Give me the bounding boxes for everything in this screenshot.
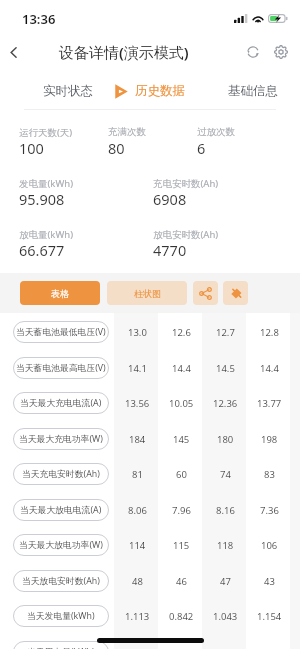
staticText: 12.6 [172, 326, 191, 339]
staticText: 当天最大充电功率(W) [19, 433, 103, 445]
staticText: 当天蓄电池最高电压(V) [16, 362, 106, 374]
staticText: 当天最大放电功率(W) [19, 539, 103, 551]
button[interactable]: 当天充电安时数(Ah) [0, 463, 300, 485]
staticText: 1.154 [257, 610, 282, 623]
staticText: 13.56 [125, 397, 150, 410]
button[interactable]: 当天发电量(kWh) [0, 605, 300, 627]
staticText: 10.05 [169, 397, 194, 410]
staticText: 发电量(kWh) [19, 177, 73, 190]
button[interactable]: 实时状态 [22, 72, 114, 110]
staticText: 当天放电安时数(Ah) [22, 575, 100, 587]
button[interactable]: 当天最大充电电流(A) [0, 392, 300, 414]
staticText: 柱状图 [134, 288, 161, 299]
staticText: 66.677 [19, 240, 65, 260]
staticText: 12.7 [216, 326, 235, 339]
staticText: 过放次数 [197, 126, 235, 138]
staticText: 1.113 [125, 610, 150, 623]
staticText: 当天蓄电池最低电压(V) [16, 326, 106, 338]
staticText: 4770 [153, 240, 187, 260]
button[interactable]: Back [0, 32, 26, 72]
staticText: 14.4 [260, 362, 279, 375]
staticText: 114 [129, 539, 146, 552]
button[interactable]: 基础信息 [206, 72, 300, 110]
staticText: 当天发电量(kWh) [27, 610, 95, 622]
staticText: 当天最大放电电流(A) [20, 504, 102, 516]
button[interactable]: Refresh [239, 32, 267, 72]
staticText: 8.16 [216, 504, 235, 517]
staticText: 180 [217, 433, 234, 446]
staticText: 13.0 [128, 326, 147, 339]
staticText: 实时状态 [43, 83, 93, 99]
staticText: 14.5 [216, 362, 235, 375]
button[interactable]: 当天最大放电功率(W) [0, 534, 300, 556]
staticText: 46 [176, 575, 187, 588]
button[interactable]: 当天最大放电电流(A) [0, 499, 300, 521]
staticText: 81 [132, 468, 143, 481]
staticText: 放电量(kWh) [19, 228, 73, 241]
staticText: 历史数据 [135, 83, 185, 99]
staticText: 80 [108, 138, 125, 158]
staticText: 48 [132, 575, 143, 588]
staticText: 充满次数 [108, 126, 146, 138]
staticText: 基础信息 [228, 83, 278, 99]
staticText: 当天最大充电电流(A) [20, 397, 102, 409]
staticText: 8.06 [128, 504, 147, 517]
staticText: 74 [220, 468, 231, 481]
staticText: 0.842 [169, 610, 194, 623]
button[interactable]: Settings [267, 32, 295, 72]
button[interactable]: 当天放电安时数(Ah) [0, 570, 300, 592]
button[interactable]: 当天蓄电池最低电压(V) [0, 321, 300, 343]
staticText: 13.77 [257, 397, 282, 410]
staticText: 12.36 [213, 397, 238, 410]
staticText: 放电安时数(Ah) [153, 228, 219, 241]
staticText: 100 [19, 138, 44, 158]
staticText: 115 [173, 539, 190, 552]
staticText: 106 [261, 539, 278, 552]
staticText: 60 [176, 468, 187, 481]
button[interactable]: 表格 [20, 281, 100, 305]
staticText: 43 [264, 575, 275, 588]
staticText: 118 [217, 539, 234, 552]
staticText: 当天充电安时数(Ah) [22, 468, 100, 480]
button[interactable]: Share [193, 281, 218, 305]
staticText: 145 [173, 433, 190, 446]
staticText: 198 [261, 433, 278, 446]
staticText: 14.4 [172, 362, 191, 375]
staticText: 6908 [153, 189, 187, 209]
staticText: 充电安时数(Ah) [153, 177, 219, 190]
button[interactable]: 当天用电量(kWh) [0, 641, 300, 649]
staticText: 95.908 [19, 189, 65, 209]
staticText: 83 [264, 468, 275, 481]
button[interactable]: 柱状图 [107, 281, 187, 305]
staticText: 表格 [51, 288, 69, 299]
staticText: 13:36 [22, 10, 56, 28]
staticText: 1.043 [213, 610, 238, 623]
button[interactable]: 历史数据 [114, 72, 186, 110]
staticText: 184 [129, 433, 146, 446]
staticText: 当天用电量(kWh) [27, 646, 95, 649]
staticText: 14.1 [128, 362, 147, 375]
staticText: 设备详情(演示模式) [59, 42, 189, 62]
staticText: 6 [197, 138, 206, 158]
staticText: 47 [220, 575, 231, 588]
button[interactable]: 当天最大充电功率(W) [0, 428, 300, 450]
staticText: 12.8 [260, 326, 279, 339]
staticText: 运行天数(天) [19, 126, 73, 139]
staticText: 7.36 [260, 504, 279, 517]
button[interactable]: Clear [223, 281, 248, 305]
staticText: 7.96 [172, 504, 191, 517]
button[interactable]: 当天蓄电池最高电压(V) [0, 357, 300, 379]
